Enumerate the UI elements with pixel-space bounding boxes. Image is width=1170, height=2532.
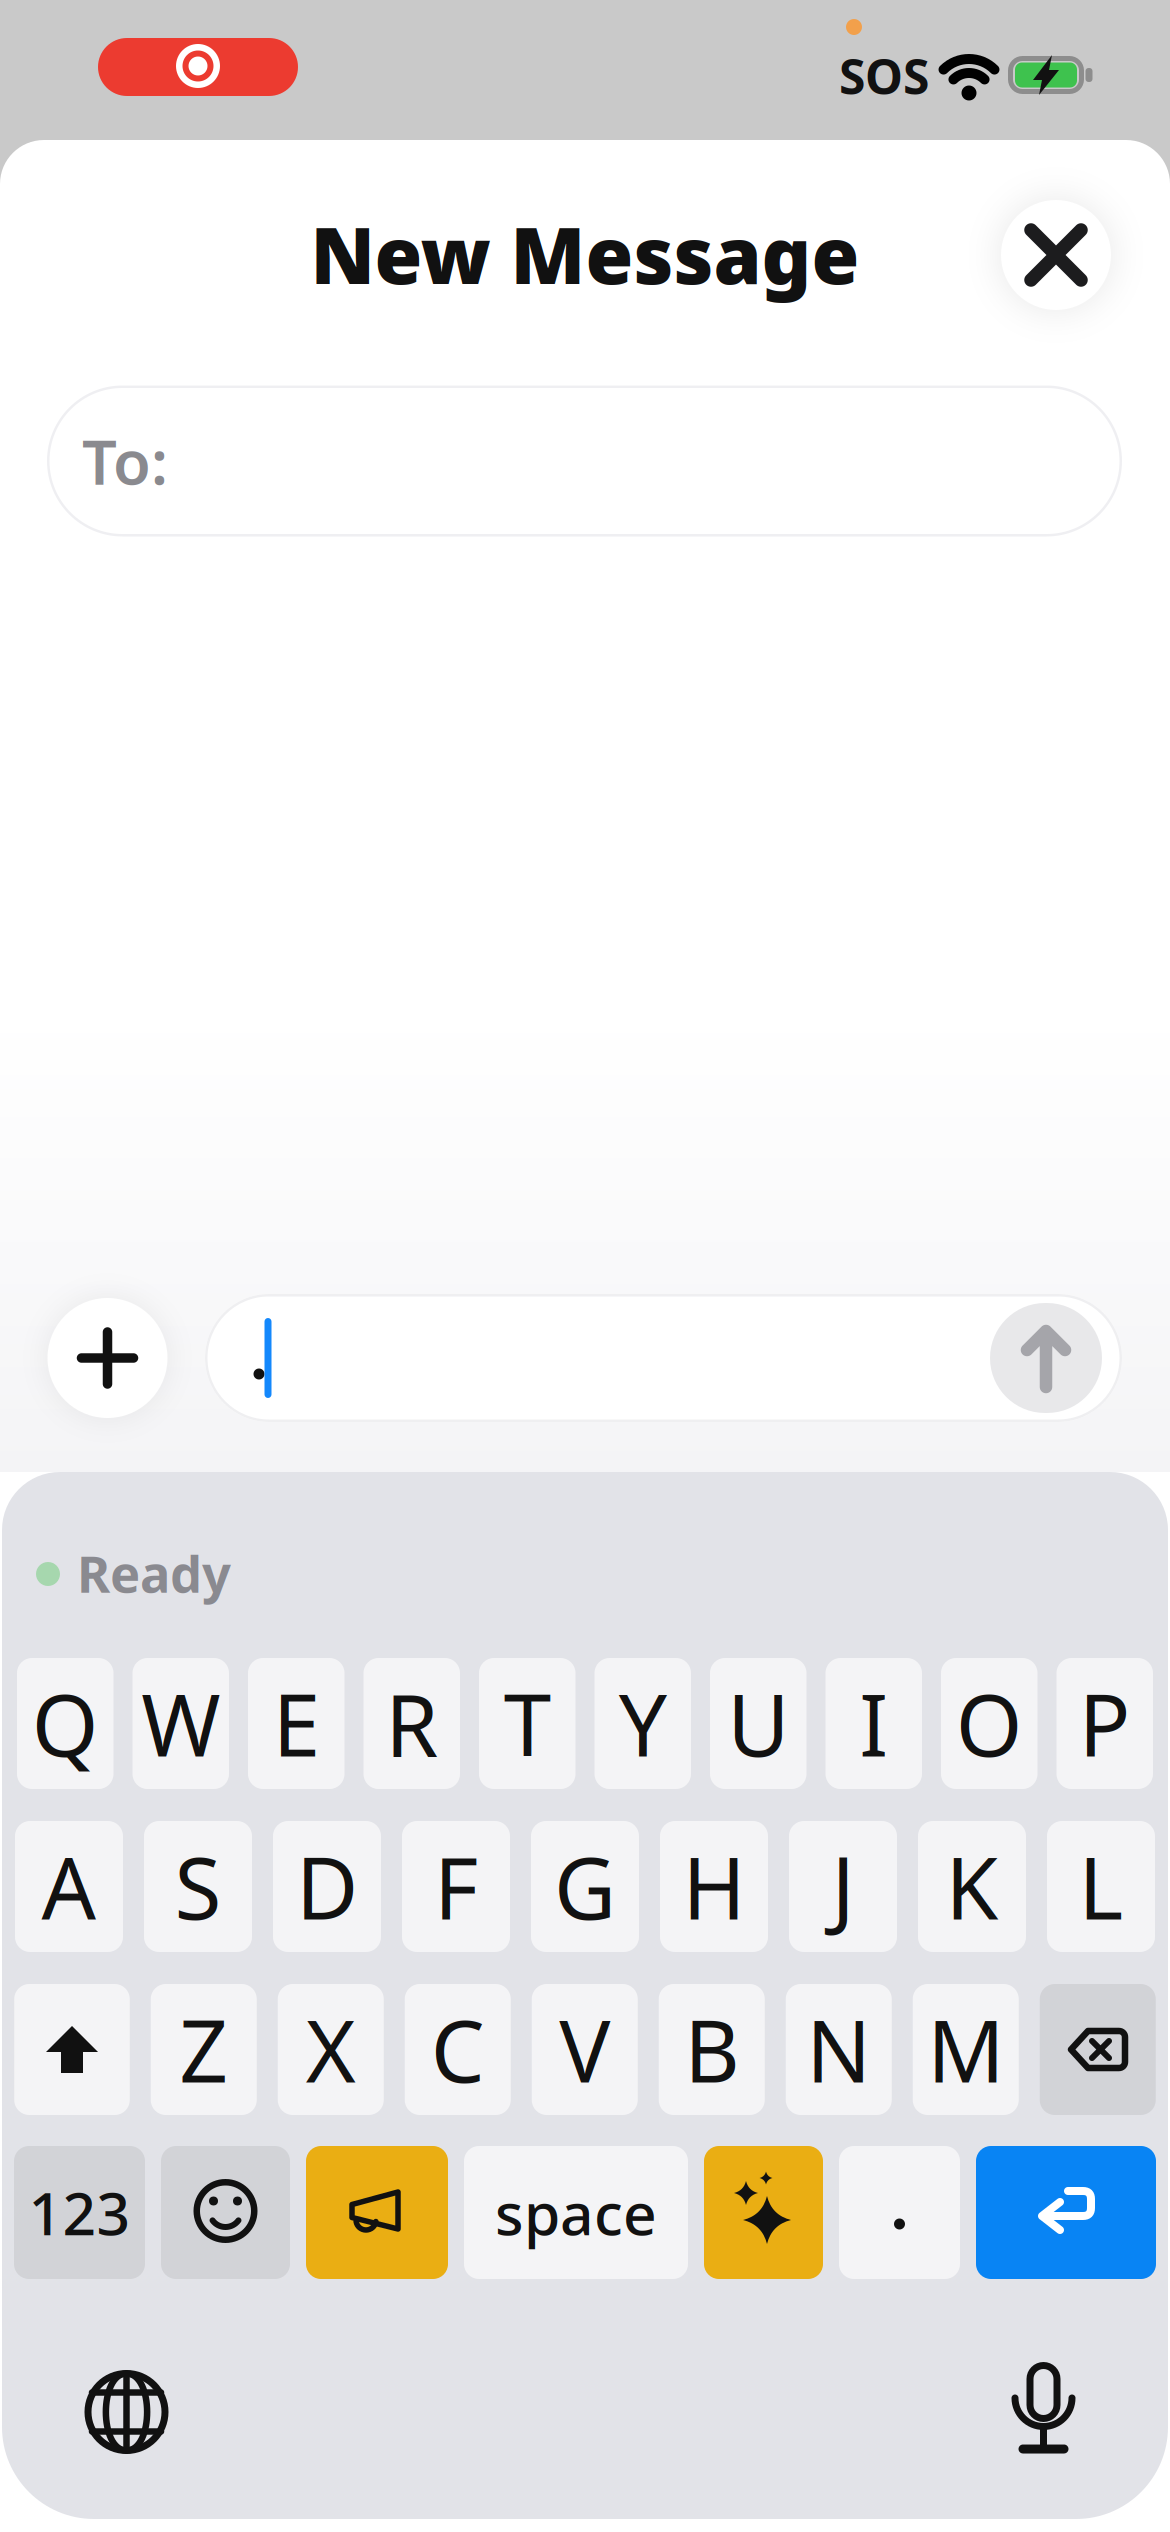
staticText: Ready: [77, 1539, 231, 1607]
staticText: 123: [28, 2173, 130, 2251]
staticText: SOS: [839, 44, 929, 108]
staticText: M: [927, 1993, 1004, 2106]
staticText: O: [956, 1667, 1023, 1780]
staticText: S: [174, 1830, 221, 1943]
staticText: space: [495, 2173, 657, 2251]
staticText: E: [273, 1667, 320, 1780]
staticText: K: [945, 1830, 998, 1943]
staticText: J: [831, 1830, 854, 1943]
staticText: T: [504, 1667, 551, 1780]
staticText: H: [682, 1830, 745, 1943]
staticText: A: [41, 1830, 96, 1943]
staticText: F: [434, 1830, 478, 1943]
staticText: I: [859, 1667, 888, 1780]
staticText: X: [306, 1993, 356, 2106]
staticText: To:: [82, 420, 168, 502]
staticText: R: [385, 1667, 438, 1780]
staticText: V: [559, 1993, 610, 2106]
staticText: W: [141, 1667, 220, 1780]
staticText: Z: [179, 1993, 228, 2106]
staticText: B: [684, 1993, 739, 2106]
staticText: N: [806, 1993, 871, 2106]
staticText: New Message: [310, 203, 859, 305]
staticText: U: [727, 1667, 789, 1780]
staticText: L: [1078, 1830, 1123, 1943]
staticText: Q: [32, 1667, 99, 1780]
staticText: P: [1079, 1667, 1131, 1780]
staticText: C: [431, 1993, 485, 2106]
staticText: Y: [619, 1667, 667, 1780]
staticText: G: [554, 1830, 616, 1943]
staticText: D: [296, 1830, 358, 1943]
